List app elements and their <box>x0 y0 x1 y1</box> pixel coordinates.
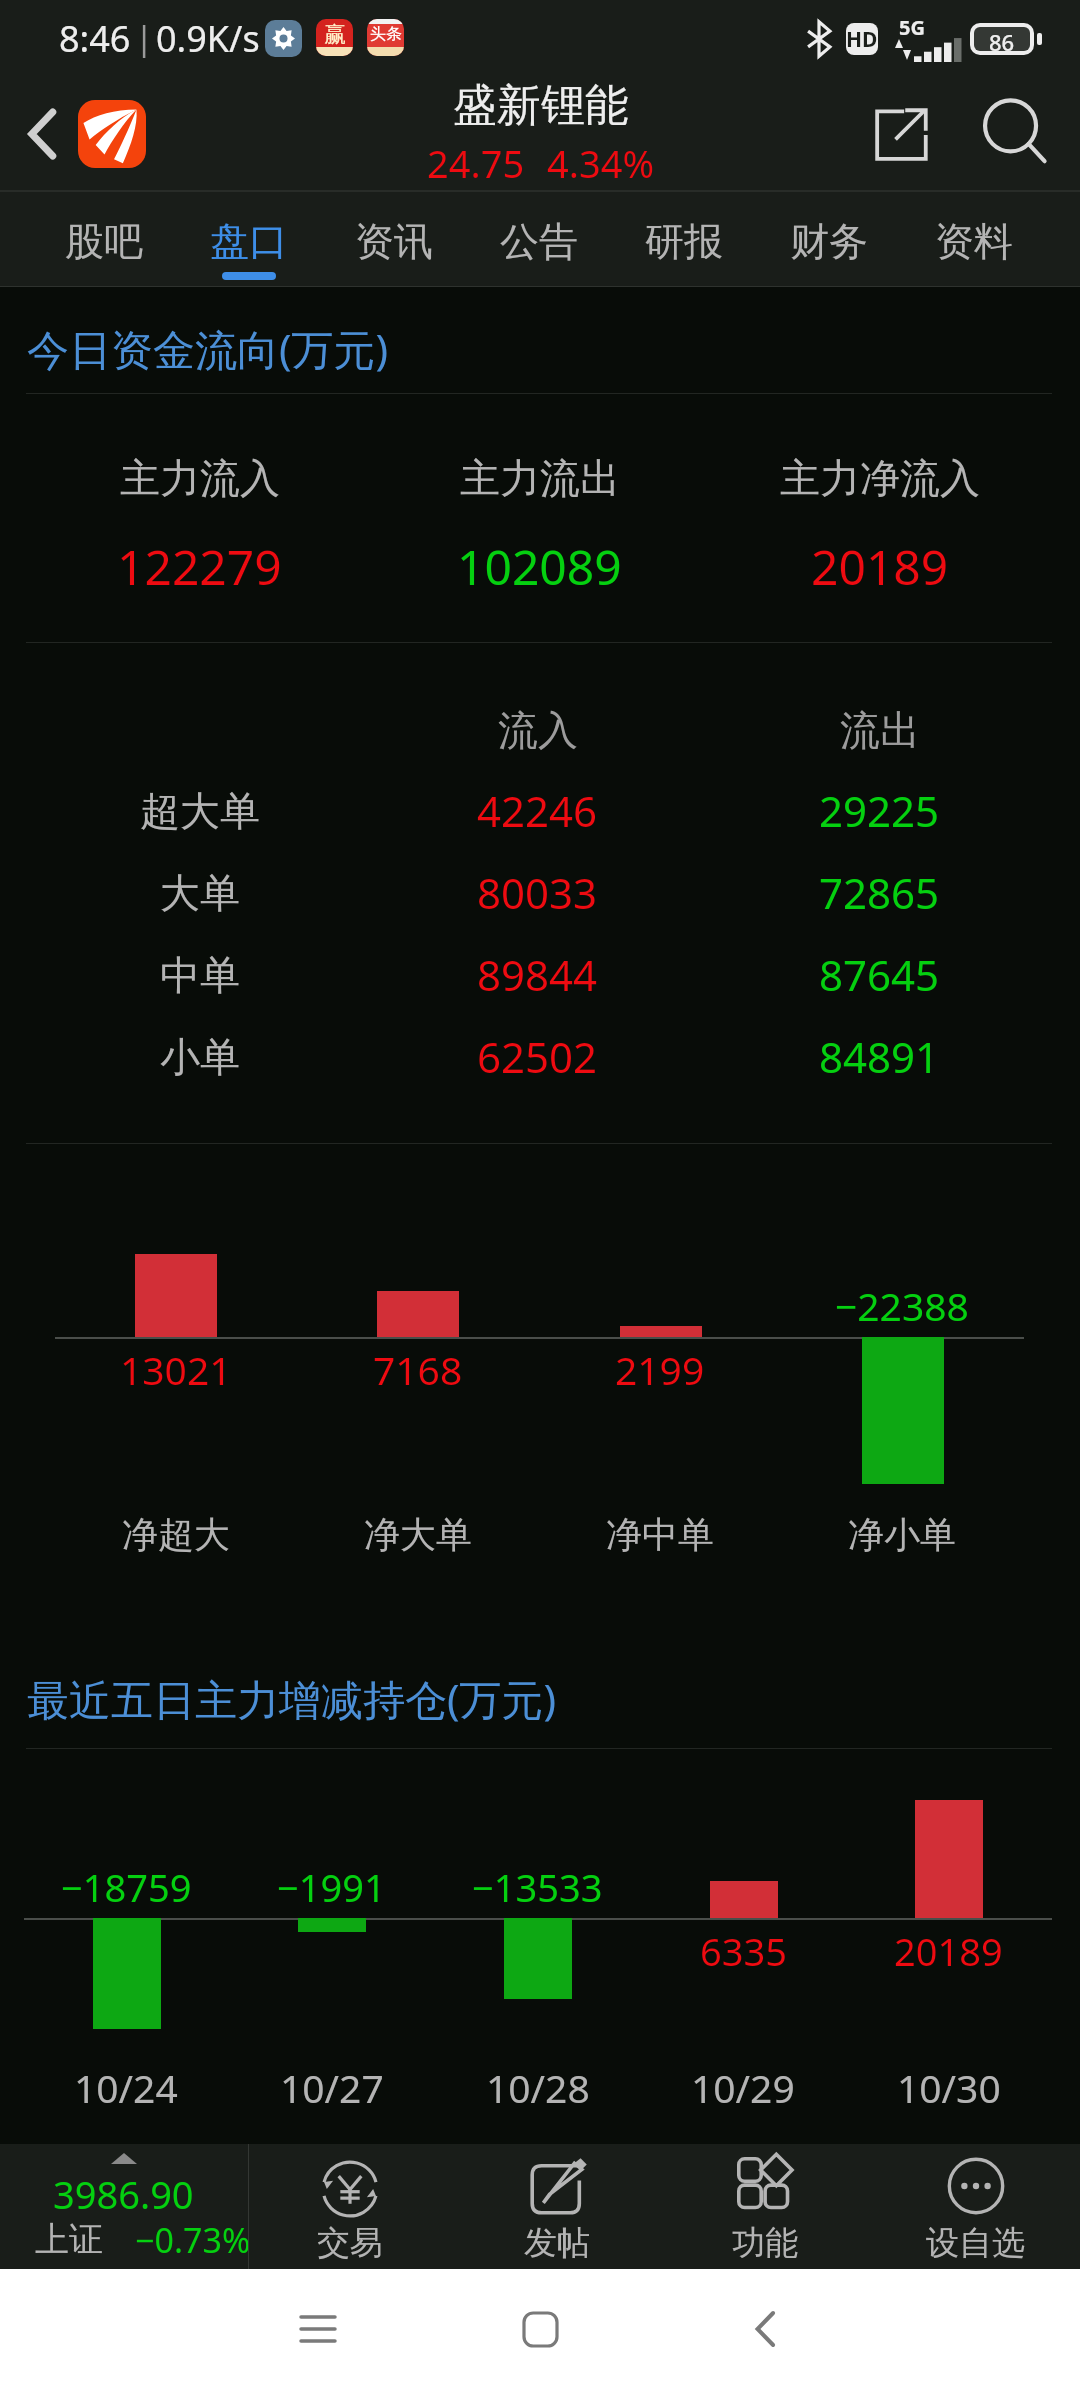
staticText: 42246 <box>477 782 598 839</box>
button[interactable]: 资讯 <box>322 192 467 287</box>
button[interactable]: 股吧 <box>32 192 177 287</box>
staticText: −0.73% <box>135 2217 251 2263</box>
staticText: 主力流入 <box>120 453 280 503</box>
staticText: 流入 <box>498 705 578 755</box>
staticText: 小单 <box>160 1032 240 1082</box>
staticText: −18759 <box>61 1861 192 1913</box>
staticText: 发帖 <box>524 2222 590 2264</box>
staticText: 5G <box>899 14 925 41</box>
staticText: 资料 <box>935 217 1013 266</box>
button[interactable]: 交易 <box>247 2144 453 2269</box>
staticText: 80033 <box>477 864 598 921</box>
staticText: 设自选 <box>926 2222 1025 2264</box>
staticText: 公告 <box>500 217 578 266</box>
staticText: 10/28 <box>486 2061 590 2114</box>
staticText: 头条 <box>370 24 402 44</box>
staticText: 功能 <box>732 2222 798 2264</box>
staticText: 4.34% <box>547 137 654 189</box>
button[interactable]: 3986.90 <box>0 2144 248 2269</box>
staticText: 上证 <box>35 2218 103 2261</box>
staticText: 122279 <box>117 534 282 599</box>
button[interactable]: 功能 <box>662 2144 868 2269</box>
button[interactable]: 发帖 <box>454 2144 660 2269</box>
button[interactable]: Back <box>705 2269 825 2389</box>
staticText: 股吧 <box>65 217 143 266</box>
staticText: 净大单 <box>364 1512 472 1557</box>
staticText: 主力流出 <box>460 453 620 503</box>
staticText: 净小单 <box>848 1512 956 1557</box>
staticText: 89844 <box>477 946 598 1003</box>
button[interactable]: Share <box>852 84 952 184</box>
staticText: 0.9K/s <box>156 14 260 63</box>
staticText: 中单 <box>160 950 240 1000</box>
staticText: 84891 <box>819 1028 940 1085</box>
staticText: 盛新锂能 <box>453 78 629 133</box>
staticText: 13021 <box>120 1343 232 1396</box>
button[interactable]: Settings <box>265 20 302 57</box>
staticText: 62502 <box>477 1028 598 1085</box>
staticText: 8:46 <box>59 14 131 63</box>
staticText: 盘口 <box>210 217 288 266</box>
button[interactable]: 盘口 <box>177 192 322 287</box>
staticText: 今日资金流向(万元) <box>27 320 389 377</box>
staticText: 净中单 <box>606 1512 714 1557</box>
staticText: 主力净流入 <box>780 453 980 503</box>
staticText: 72865 <box>819 864 940 921</box>
staticText: 29225 <box>819 782 940 839</box>
button[interactable]: Back <box>6 98 78 170</box>
staticText: 10/29 <box>691 2061 795 2114</box>
staticText: 10/27 <box>280 2061 384 2114</box>
staticText: 20189 <box>894 1925 1003 1977</box>
button[interactable]: Eastmoney home <box>78 100 146 168</box>
staticText: 净超大 <box>122 1512 230 1557</box>
staticText: 资讯 <box>355 217 433 266</box>
staticText: 超大单 <box>140 786 260 836</box>
button[interactable]: 设自选 <box>873 2144 1079 2269</box>
staticText: 3986.90 <box>53 2168 194 2220</box>
staticText: | <box>135 15 154 60</box>
staticText: −13533 <box>472 1861 603 1913</box>
staticText: HD <box>846 25 878 54</box>
staticText: 6335 <box>700 1925 787 1977</box>
staticText: 102089 <box>457 534 622 599</box>
button[interactable]: Recents <box>258 2269 378 2389</box>
staticText: 10/30 <box>897 2061 1001 2114</box>
staticText: 赢 <box>324 21 346 49</box>
staticText: −1991 <box>277 1861 386 1913</box>
staticText: 研报 <box>645 217 723 266</box>
button[interactable]: Home <box>480 2269 600 2389</box>
staticText: 流出 <box>840 705 920 755</box>
staticText: 大单 <box>160 868 240 918</box>
staticText: 87645 <box>819 946 940 1003</box>
button[interactable]: 研报 <box>612 192 757 287</box>
staticText: 86 <box>989 27 1015 51</box>
staticText: −22388 <box>835 1279 969 1332</box>
staticText: 交易 <box>317 2222 383 2264</box>
staticText: 财务 <box>790 217 868 266</box>
staticText: 20189 <box>811 534 949 599</box>
staticText: 10/24 <box>74 2061 178 2114</box>
staticText: 7168 <box>373 1343 463 1396</box>
staticText: 2199 <box>615 1343 705 1396</box>
staticText: 最近五日主力增减持仓(万元) <box>27 1670 557 1727</box>
button[interactable]: Search <box>966 84 1066 184</box>
staticText: 24.75 <box>427 137 525 189</box>
button[interactable]: 公告 <box>467 192 612 287</box>
button[interactable]: 财务 <box>757 192 902 287</box>
button[interactable]: 资料 <box>902 192 1047 287</box>
